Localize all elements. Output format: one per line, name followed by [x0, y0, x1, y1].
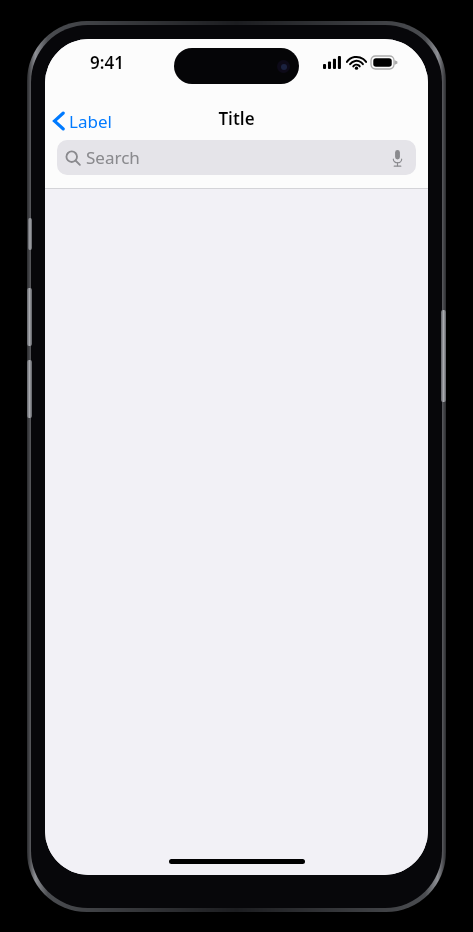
- button[interactable]: Search: [57, 140, 416, 175]
- staticText: 9:41: [90, 51, 124, 74]
- staticText: Search: [86, 146, 140, 169]
- staticText: Title: [45, 107, 428, 130]
- staticText: Label: [69, 110, 112, 133]
- button[interactable]: Voice search: [386, 147, 408, 169]
- button[interactable]: Label: [49, 105, 122, 137]
